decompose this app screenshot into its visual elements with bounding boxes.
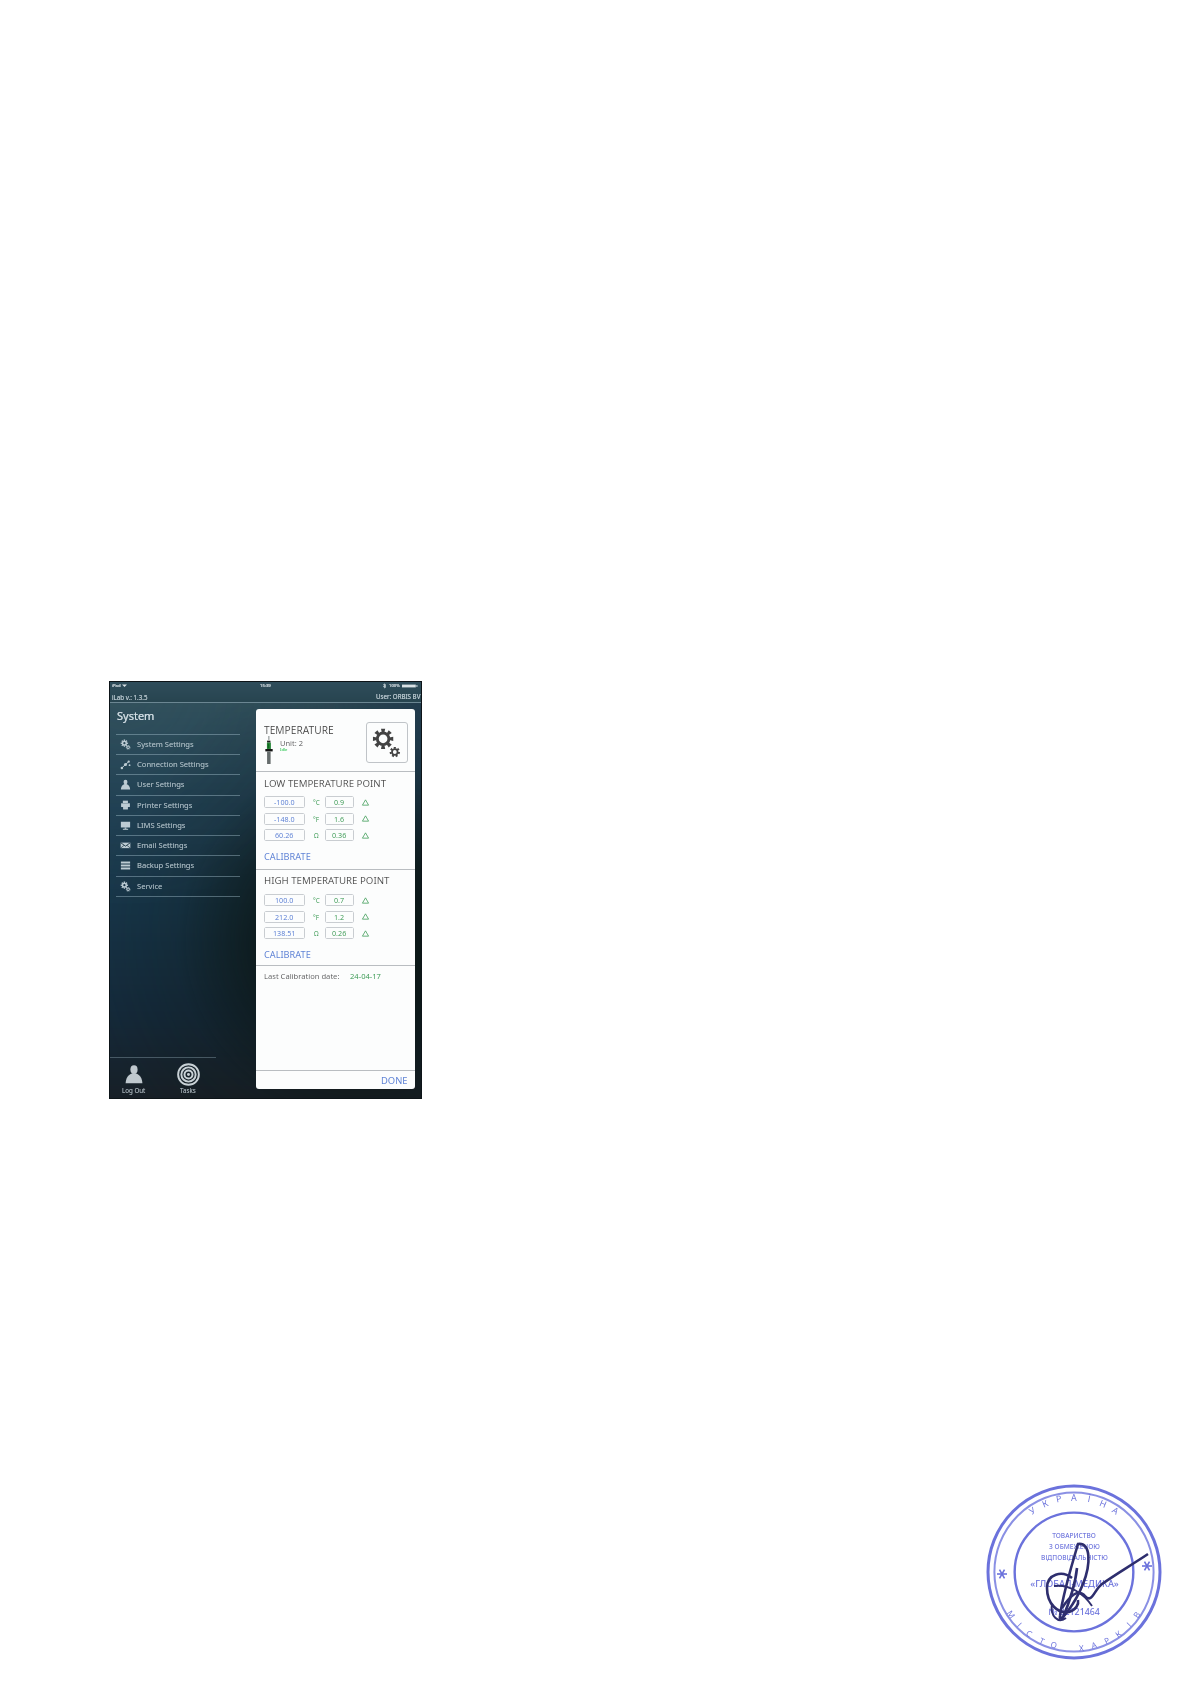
staticText: У bbox=[1026, 1503, 1038, 1517]
staticText: Ω bbox=[314, 929, 319, 938]
staticText: А bbox=[1090, 1638, 1098, 1651]
button[interactable]: System Settings bbox=[116, 734, 240, 754]
staticText: iLab v.: 1.3.5 bbox=[112, 693, 148, 701]
staticText: К bbox=[1040, 1496, 1050, 1510]
staticText: 0.36 bbox=[332, 830, 347, 840]
staticText: В bbox=[1130, 1609, 1143, 1620]
staticText: 138.51 bbox=[273, 928, 296, 938]
button[interactable]: Backup Settings bbox=[116, 855, 240, 875]
staticText: М bbox=[1005, 1608, 1018, 1621]
button[interactable]: Log Out bbox=[115, 1062, 153, 1099]
button[interactable]: 0.26 bbox=[325, 927, 354, 939]
button[interactable]: 1.2 bbox=[325, 911, 354, 923]
staticText: Т bbox=[1038, 1635, 1047, 1647]
button[interactable]: LIMS Settings bbox=[116, 815, 240, 835]
staticText: °C bbox=[313, 798, 320, 807]
staticText: Unit: 2 bbox=[280, 738, 304, 748]
button[interactable]: 212.0 bbox=[264, 911, 305, 923]
staticText: °F bbox=[313, 913, 320, 922]
staticText: ТОВАРИСТВО bbox=[1052, 1531, 1096, 1540]
button[interactable]: 100.0 bbox=[264, 894, 305, 906]
staticText: 0.9 bbox=[334, 797, 345, 807]
staticText: 60.26 bbox=[275, 830, 294, 840]
button[interactable]: Tasks bbox=[169, 1062, 207, 1099]
staticText: °C bbox=[313, 896, 320, 905]
staticText: LIMS Settings bbox=[137, 820, 186, 830]
staticText: Р bbox=[1055, 1491, 1063, 1504]
staticText: № 32121464 bbox=[1048, 1606, 1100, 1618]
staticText: 15:39 bbox=[260, 683, 271, 689]
staticText: ВІДПОВІДАЛЬНІСТЮ bbox=[1041, 1553, 1108, 1562]
button[interactable]: Settings bbox=[366, 722, 408, 763]
staticText: TEMPERATURE bbox=[264, 723, 334, 737]
staticText: Last Calibration date: bbox=[264, 971, 340, 981]
button[interactable]: 60.26 bbox=[264, 829, 305, 841]
staticText: °F bbox=[313, 815, 320, 824]
button[interactable]: Printer Settings bbox=[116, 795, 240, 815]
staticText: А bbox=[1110, 1503, 1122, 1517]
button[interactable]: 138.51 bbox=[264, 927, 305, 939]
button[interactable]: DONE bbox=[378, 1073, 411, 1087]
staticText: 0.26 bbox=[332, 928, 347, 938]
staticText: CALIBRATE bbox=[264, 948, 311, 960]
staticText: О bbox=[1049, 1638, 1059, 1651]
button[interactable]: 0.36 bbox=[325, 829, 354, 841]
staticText: User: ORBIS BV bbox=[376, 692, 421, 700]
button[interactable]: 1.6 bbox=[325, 813, 354, 825]
staticText: -148.0 bbox=[274, 814, 295, 824]
staticText: System bbox=[117, 708, 155, 723]
button[interactable]: CALIBRATE bbox=[264, 850, 313, 862]
staticText: Tasks bbox=[180, 1086, 196, 1094]
button[interactable]: User Settings bbox=[116, 774, 240, 794]
staticText: LOW TEMPERATURE POINT bbox=[264, 777, 387, 790]
staticText: І bbox=[1015, 1620, 1025, 1630]
staticText: CALIBRATE bbox=[264, 850, 311, 862]
staticText: -100.0 bbox=[274, 797, 295, 807]
staticText: System Settings bbox=[137, 739, 194, 749]
staticText: iPad bbox=[112, 683, 121, 689]
button[interactable]: Connection Settings bbox=[116, 754, 240, 774]
staticText: І bbox=[1124, 1619, 1134, 1629]
staticText: 1.2 bbox=[334, 912, 345, 922]
staticText: С bbox=[1024, 1627, 1035, 1640]
staticText: З ОБМЕЖЕНОЮ bbox=[1049, 1542, 1100, 1551]
staticText: 24-04-17 bbox=[350, 971, 381, 981]
staticText: 1.6 bbox=[334, 814, 345, 824]
staticText: 100% bbox=[389, 683, 400, 689]
staticText: Connection Settings bbox=[137, 759, 209, 769]
staticText: «ГЛОБАЛ-МЕДИКА» bbox=[1030, 1577, 1119, 1590]
button[interactable]: -100.0 bbox=[264, 796, 305, 808]
staticText: Idle bbox=[280, 747, 288, 753]
staticText: HIGH TEMPERATURE POINT bbox=[264, 874, 390, 887]
staticText: Р bbox=[1102, 1634, 1111, 1646]
staticText: Х bbox=[1079, 1642, 1085, 1653]
button[interactable]: Email Settings bbox=[116, 835, 240, 855]
staticText: 0.7 bbox=[334, 895, 345, 905]
staticText: К bbox=[1113, 1627, 1124, 1640]
staticText: А bbox=[1071, 1491, 1077, 1503]
button[interactable]: Service bbox=[116, 876, 240, 896]
staticText: Email Settings bbox=[137, 840, 188, 850]
staticText: User Settings bbox=[137, 779, 185, 789]
button[interactable]: 0.7 bbox=[325, 894, 354, 906]
staticText: Printer Settings bbox=[137, 800, 193, 810]
staticText: Log Out bbox=[122, 1086, 146, 1094]
staticText: DONE bbox=[381, 1074, 408, 1087]
staticText: Ω bbox=[314, 831, 319, 840]
button[interactable]: CALIBRATE bbox=[264, 948, 313, 960]
staticText: Service bbox=[137, 881, 163, 891]
staticText: Ї bbox=[1087, 1492, 1092, 1504]
staticText: 212.0 bbox=[275, 912, 294, 922]
button[interactable]: 0.9 bbox=[325, 796, 354, 808]
staticText: Н bbox=[1098, 1496, 1109, 1510]
staticText: Backup Settings bbox=[137, 860, 195, 870]
staticText: 100.0 bbox=[275, 895, 294, 905]
button[interactable]: -148.0 bbox=[264, 813, 305, 825]
